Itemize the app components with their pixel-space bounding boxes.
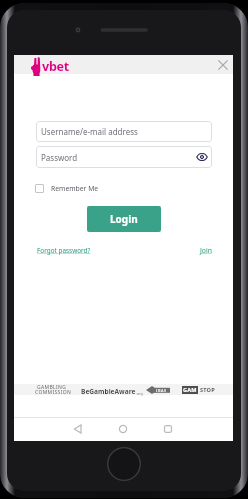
button[interactable]: Recent apps xyxy=(158,419,178,439)
staticText: GAMBLING xyxy=(37,384,67,391)
staticText: vbet xyxy=(42,58,69,75)
button[interactable]: Forgot password? xyxy=(37,246,91,255)
staticText: Password xyxy=(41,152,78,163)
staticText: Username/e-mail address xyxy=(41,126,138,137)
button[interactable]: Close xyxy=(216,58,230,72)
staticText: Login xyxy=(110,212,138,226)
button[interactable]: Home xyxy=(113,419,133,439)
staticText: BeGambleAware xyxy=(81,387,136,396)
button[interactable]: Username/e-mail address xyxy=(36,121,212,142)
staticText: COMMISSION xyxy=(35,389,72,396)
staticText: .org xyxy=(136,391,143,396)
button[interactable]: Login xyxy=(87,206,161,232)
staticText: Remember Me xyxy=(51,184,99,193)
staticText: STOP xyxy=(200,386,215,394)
button[interactable]: Show password xyxy=(196,151,208,163)
staticText: GAM xyxy=(183,386,197,394)
button[interactable]: Back xyxy=(68,419,88,439)
button[interactable]: Join xyxy=(200,246,212,255)
staticText: IBAS xyxy=(156,388,167,393)
button[interactable]: Password xyxy=(36,146,212,168)
button[interactable]: Remember Me xyxy=(35,184,99,193)
